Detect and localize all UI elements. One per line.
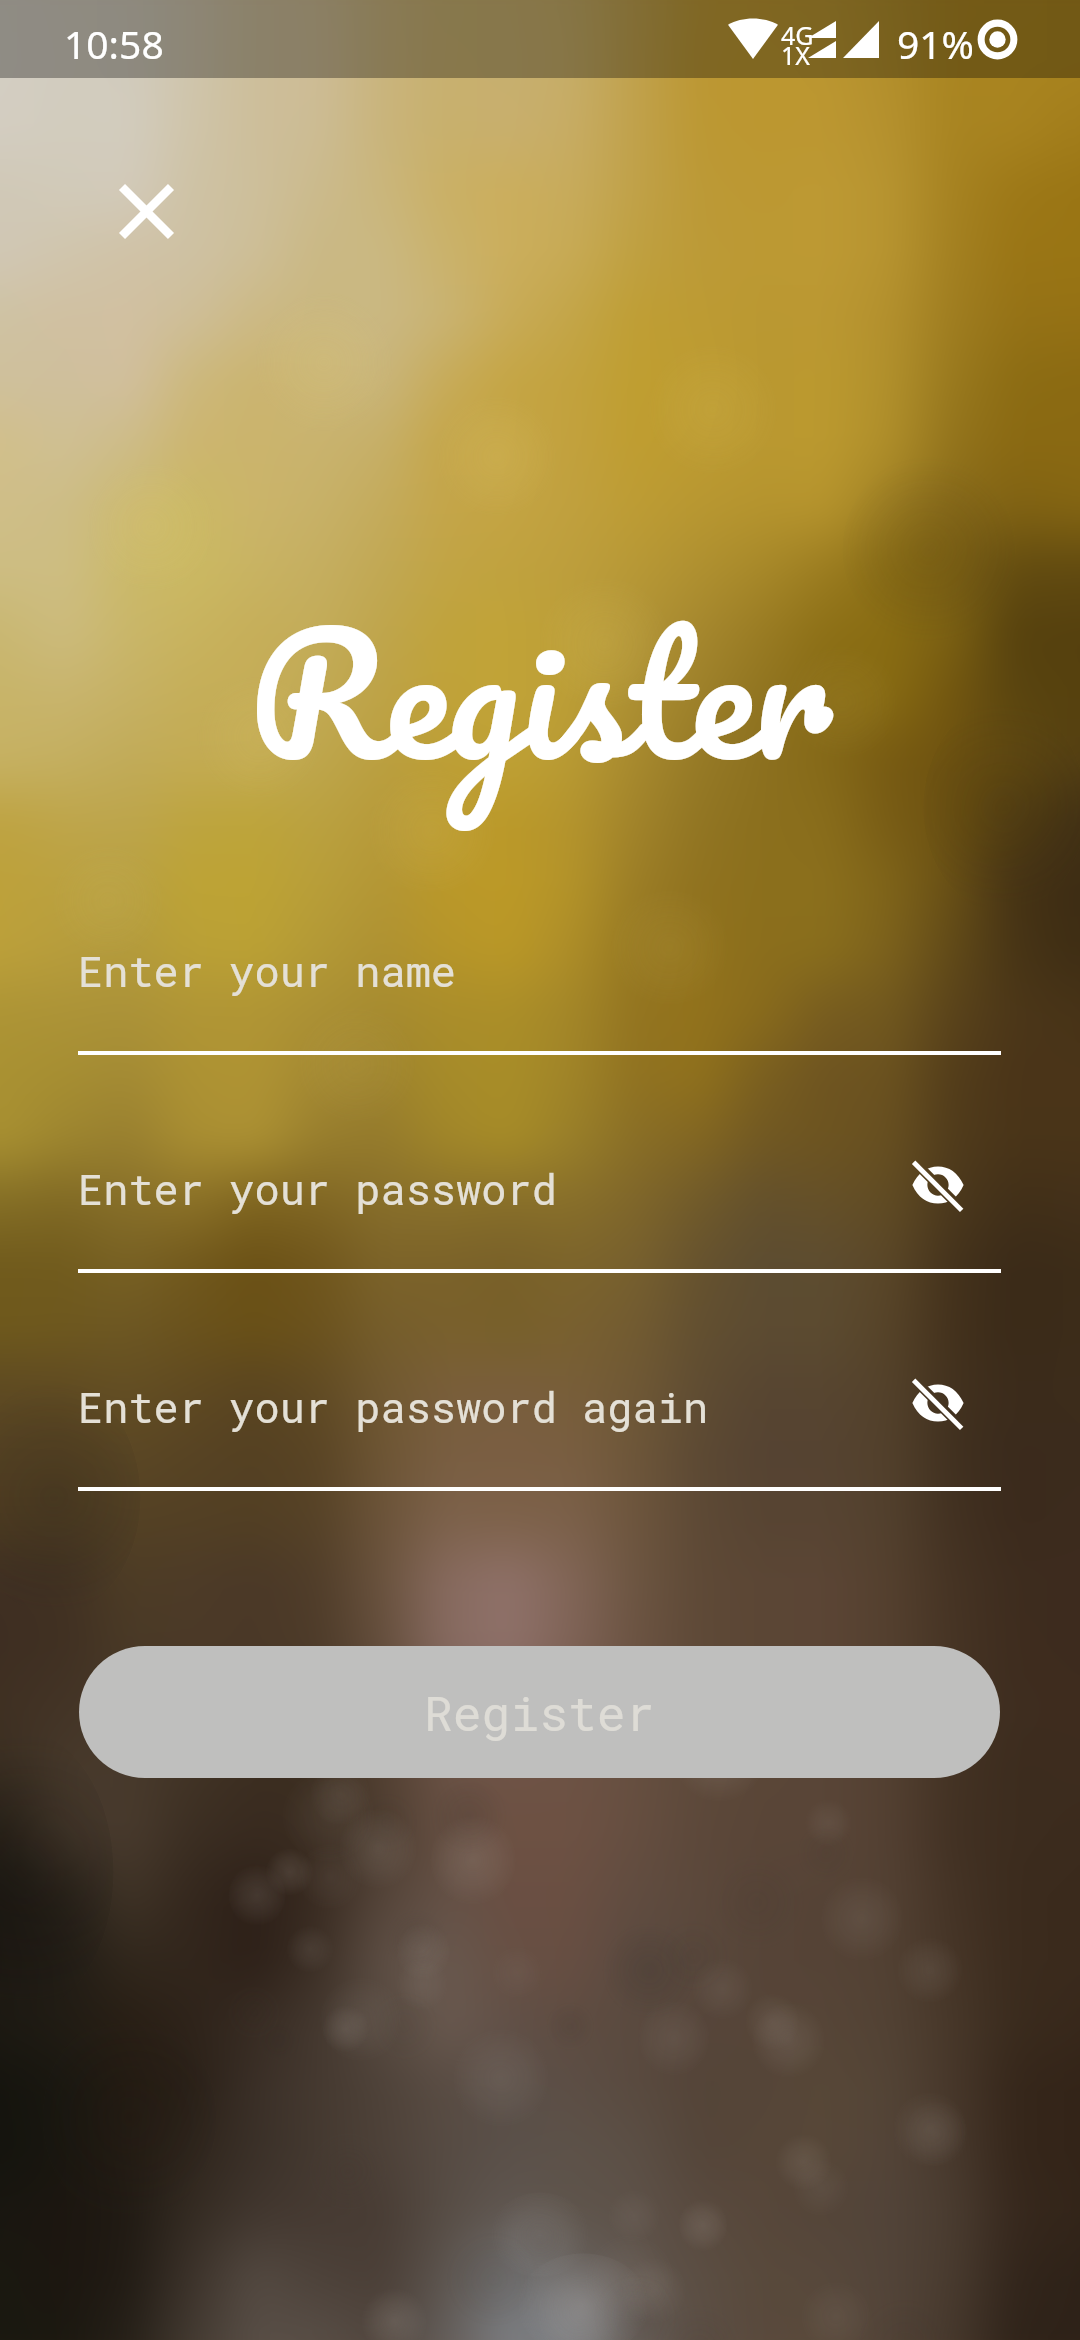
button[interactable]: Toggle password visibility <box>892 1357 984 1449</box>
button[interactable]: Register <box>79 1646 1000 1778</box>
staticText: 91% <box>897 17 975 70</box>
staticText: Register <box>0 552 1080 831</box>
staticText: 10:58 <box>64 17 164 70</box>
button[interactable]: Close <box>100 165 192 257</box>
staticText: 1X <box>781 38 810 72</box>
staticText: Enter your name <box>78 943 457 998</box>
button[interactable]: Toggle password visibility <box>892 1139 984 1231</box>
button[interactable]: Enter your password again <box>78 1351 1001 1491</box>
staticText: Enter your password again <box>78 1379 709 1434</box>
button[interactable]: Enter your name <box>78 915 1001 1055</box>
staticText: 4G <box>781 18 814 52</box>
button[interactable]: Enter your password <box>78 1133 1001 1273</box>
staticText: Register <box>424 1681 655 1744</box>
staticText: Enter your password <box>78 1161 557 1216</box>
